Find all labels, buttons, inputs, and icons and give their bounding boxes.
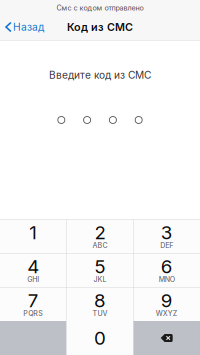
button[interactable]: 5 — [67, 253, 133, 287]
button[interactable]: 4 — [0, 253, 67, 287]
button[interactable]: 0 — [67, 321, 133, 355]
staticText: 0 — [94, 327, 106, 349]
staticText: DEF — [160, 241, 173, 250]
button[interactable]: 9 — [133, 287, 200, 321]
staticText: 7 — [28, 289, 39, 312]
staticText: 3 — [161, 221, 173, 244]
staticText: PQRS — [23, 309, 43, 318]
staticText: ABC — [92, 241, 107, 250]
staticText: 5 — [94, 255, 105, 278]
staticText: JKL — [93, 275, 106, 284]
staticText: 1 — [29, 221, 37, 244]
staticText: WXYZ — [156, 309, 178, 318]
staticText: TUV — [92, 309, 107, 318]
staticText: Назад — [13, 21, 44, 33]
button[interactable]: 1 — [0, 219, 67, 253]
staticText: 4 — [27, 255, 39, 278]
button[interactable]: 3 — [133, 219, 200, 253]
staticText: Код из СМС — [67, 20, 133, 34]
staticText: 9 — [161, 289, 173, 312]
button[interactable]: 8 — [67, 287, 133, 321]
button[interactable]: Назад — [0, 14, 50, 40]
staticText: 2 — [94, 221, 105, 244]
button[interactable]: 2 — [67, 219, 133, 253]
staticText: MNO — [159, 275, 175, 284]
staticText: Смс с кодом отправлено — [56, 3, 143, 12]
button[interactable]: 7 — [0, 287, 67, 321]
staticText: Введите код из СМС — [49, 69, 151, 81]
button[interactable]: 6 — [133, 253, 200, 287]
staticText: 8 — [94, 289, 106, 312]
button[interactable]: Delete — [133, 321, 200, 355]
staticText: 6 — [161, 255, 173, 278]
staticText: GHI — [27, 275, 39, 284]
